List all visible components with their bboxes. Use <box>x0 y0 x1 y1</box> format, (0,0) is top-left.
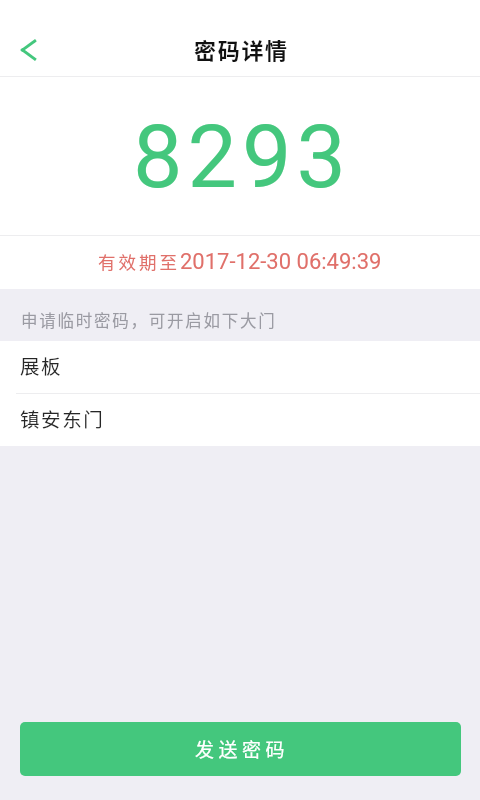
staticText: 展板 <box>20 351 63 379</box>
staticText: 8293 <box>133 105 351 208</box>
staticText: 发送密码 <box>195 735 290 763</box>
staticText: 申请临时密码，可开启如下大门 <box>21 308 277 332</box>
staticText: 有效期至2017-12-30 06:49:39 <box>98 249 382 275</box>
button[interactable]: Back <box>0 22 56 77</box>
button[interactable]: 镇安东门 <box>0 394 480 446</box>
button[interactable]: 展板 <box>0 341 480 393</box>
staticText: 镇安东门 <box>20 404 105 432</box>
staticText: 密码详情 <box>194 33 289 65</box>
button[interactable]: 发送密码 <box>20 722 461 776</box>
